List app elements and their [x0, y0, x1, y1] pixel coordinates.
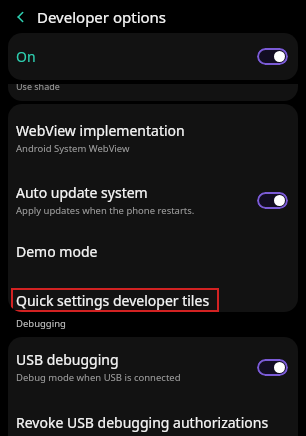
button[interactable]: Toggle: [257, 48, 288, 65]
button[interactable]: Auto update system: [8, 181, 298, 219]
button[interactable]: Toggle: [257, 192, 288, 209]
button[interactable]: On: [8, 33, 298, 80]
button[interactable]: USB debugging: [8, 348, 298, 386]
button[interactable]: Toggle: [257, 359, 288, 376]
staticText: Quick settings developer tiles: [16, 291, 210, 310]
staticText: Apply updates when the phone restarts.: [16, 204, 195, 217]
button[interactable]: WebView implementation: [8, 117, 298, 159]
staticText: Revoke USB debugging authorizations: [16, 413, 269, 432]
staticText: Android System WebView: [16, 142, 130, 155]
staticText: Demo mode: [16, 242, 98, 261]
staticText: Debug mode when USB is connected: [16, 371, 181, 384]
staticText: USB debugging: [16, 350, 119, 369]
staticText: WebView implementation: [16, 121, 185, 140]
button[interactable]: Quick settings developer tiles: [11, 288, 219, 312]
button[interactable]: Demo mode: [8, 239, 298, 264]
staticText: Debugging: [16, 317, 66, 330]
button[interactable]: Back: [10, 6, 32, 28]
staticText: Auto update system: [16, 183, 148, 202]
staticText: Developer options: [37, 7, 167, 27]
button[interactable]: Use shade: [8, 84, 298, 101]
staticText: On: [16, 47, 257, 66]
button[interactable]: Revoke USB debugging authorizations: [8, 410, 298, 435]
staticText: Use shade: [16, 84, 60, 92]
